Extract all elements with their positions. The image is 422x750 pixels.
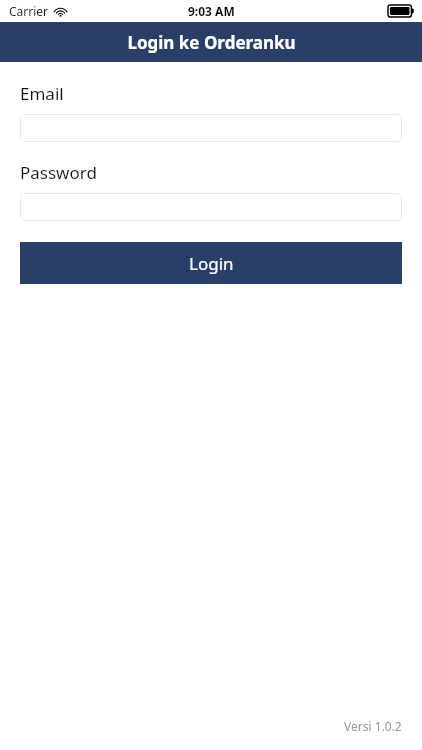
- staticText: Carrier: [9, 3, 49, 19]
- button[interactable]: Email input: [20, 114, 402, 142]
- button[interactable]: Login: [20, 242, 402, 284]
- staticText: Password: [20, 161, 97, 184]
- staticText: Login ke Orderanku: [127, 31, 296, 54]
- staticText: 9:03 AM: [188, 3, 235, 19]
- staticText: Email: [20, 82, 64, 105]
- staticText: Versi 1.0.2: [344, 718, 402, 734]
- staticText: Login: [189, 252, 234, 275]
- button[interactable]: Password input: [20, 193, 402, 221]
